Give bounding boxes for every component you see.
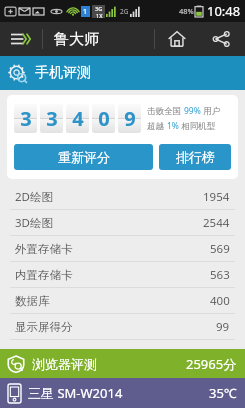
staticText: 48% — [179, 6, 194, 16]
staticText: 1954 — [203, 189, 230, 205]
staticText: 99% — [184, 105, 201, 117]
button[interactable]: 重新评分 — [14, 144, 153, 170]
staticText: 排行榜 — [176, 149, 215, 165]
staticText: 内置存储卡 — [15, 268, 73, 282]
staticText: 1 — [83, 7, 88, 17]
button[interactable]: 三星 SM-W2014 — [0, 378, 245, 408]
staticText: 用户 — [201, 105, 221, 117]
staticText: 2D绘图 — [15, 189, 53, 205]
staticText: 超越 — [147, 120, 167, 132]
button[interactable]: 显示屏得分 — [0, 314, 245, 340]
staticText: 0 — [98, 105, 110, 132]
staticText: 2G — [120, 7, 129, 16]
button[interactable]: 排行榜 — [159, 144, 231, 170]
staticText: 35℃ — [209, 384, 237, 402]
button[interactable]: 3D绘图 — [0, 210, 245, 236]
button[interactable]: 内置存储卡 — [0, 262, 245, 288]
staticText: 数据库 — [15, 294, 50, 308]
staticText: 浏览器评测 — [32, 356, 97, 372]
button[interactable]: Share — [199, 22, 243, 56]
staticText: 击败全国 — [147, 105, 184, 117]
button[interactable]: 外置存储卡 — [0, 236, 245, 262]
staticText: 三星 SM-W2014 — [28, 384, 123, 402]
staticText: 3 — [20, 105, 32, 132]
button[interactable]: Home — [155, 22, 199, 56]
staticText: 鲁大师 — [54, 30, 99, 49]
staticText: 3G — [95, 5, 103, 12]
staticText: 2544 — [203, 215, 230, 231]
staticText: 10:48 — [207, 2, 241, 20]
staticText: 4 — [72, 105, 84, 132]
staticText: 25965分 — [186, 355, 237, 373]
staticText: 外置存储卡 — [15, 242, 73, 256]
staticText: 400 — [210, 293, 230, 309]
staticText: 显示屏得分 — [15, 320, 73, 334]
button[interactable]: Menu — [0, 22, 42, 56]
staticText: 3 — [46, 105, 58, 132]
button[interactable]: 手机评测 — [0, 56, 245, 90]
staticText: 1% — [167, 120, 179, 132]
staticText: 手机评测 — [35, 64, 91, 82]
staticText: 563 — [210, 267, 230, 283]
staticText: 99 — [216, 319, 230, 335]
button[interactable]: 浏览器评测 — [0, 349, 245, 378]
staticText: 相同机型 — [179, 120, 216, 132]
staticText: 9 — [124, 105, 136, 132]
button[interactable]: 2D绘图 — [0, 184, 245, 210]
staticText: 1X — [96, 12, 103, 18]
staticText: 569 — [210, 241, 230, 257]
button[interactable]: 数据库 — [0, 288, 245, 314]
staticText: 3D绘图 — [15, 215, 53, 231]
staticText: 重新评分 — [58, 149, 110, 165]
